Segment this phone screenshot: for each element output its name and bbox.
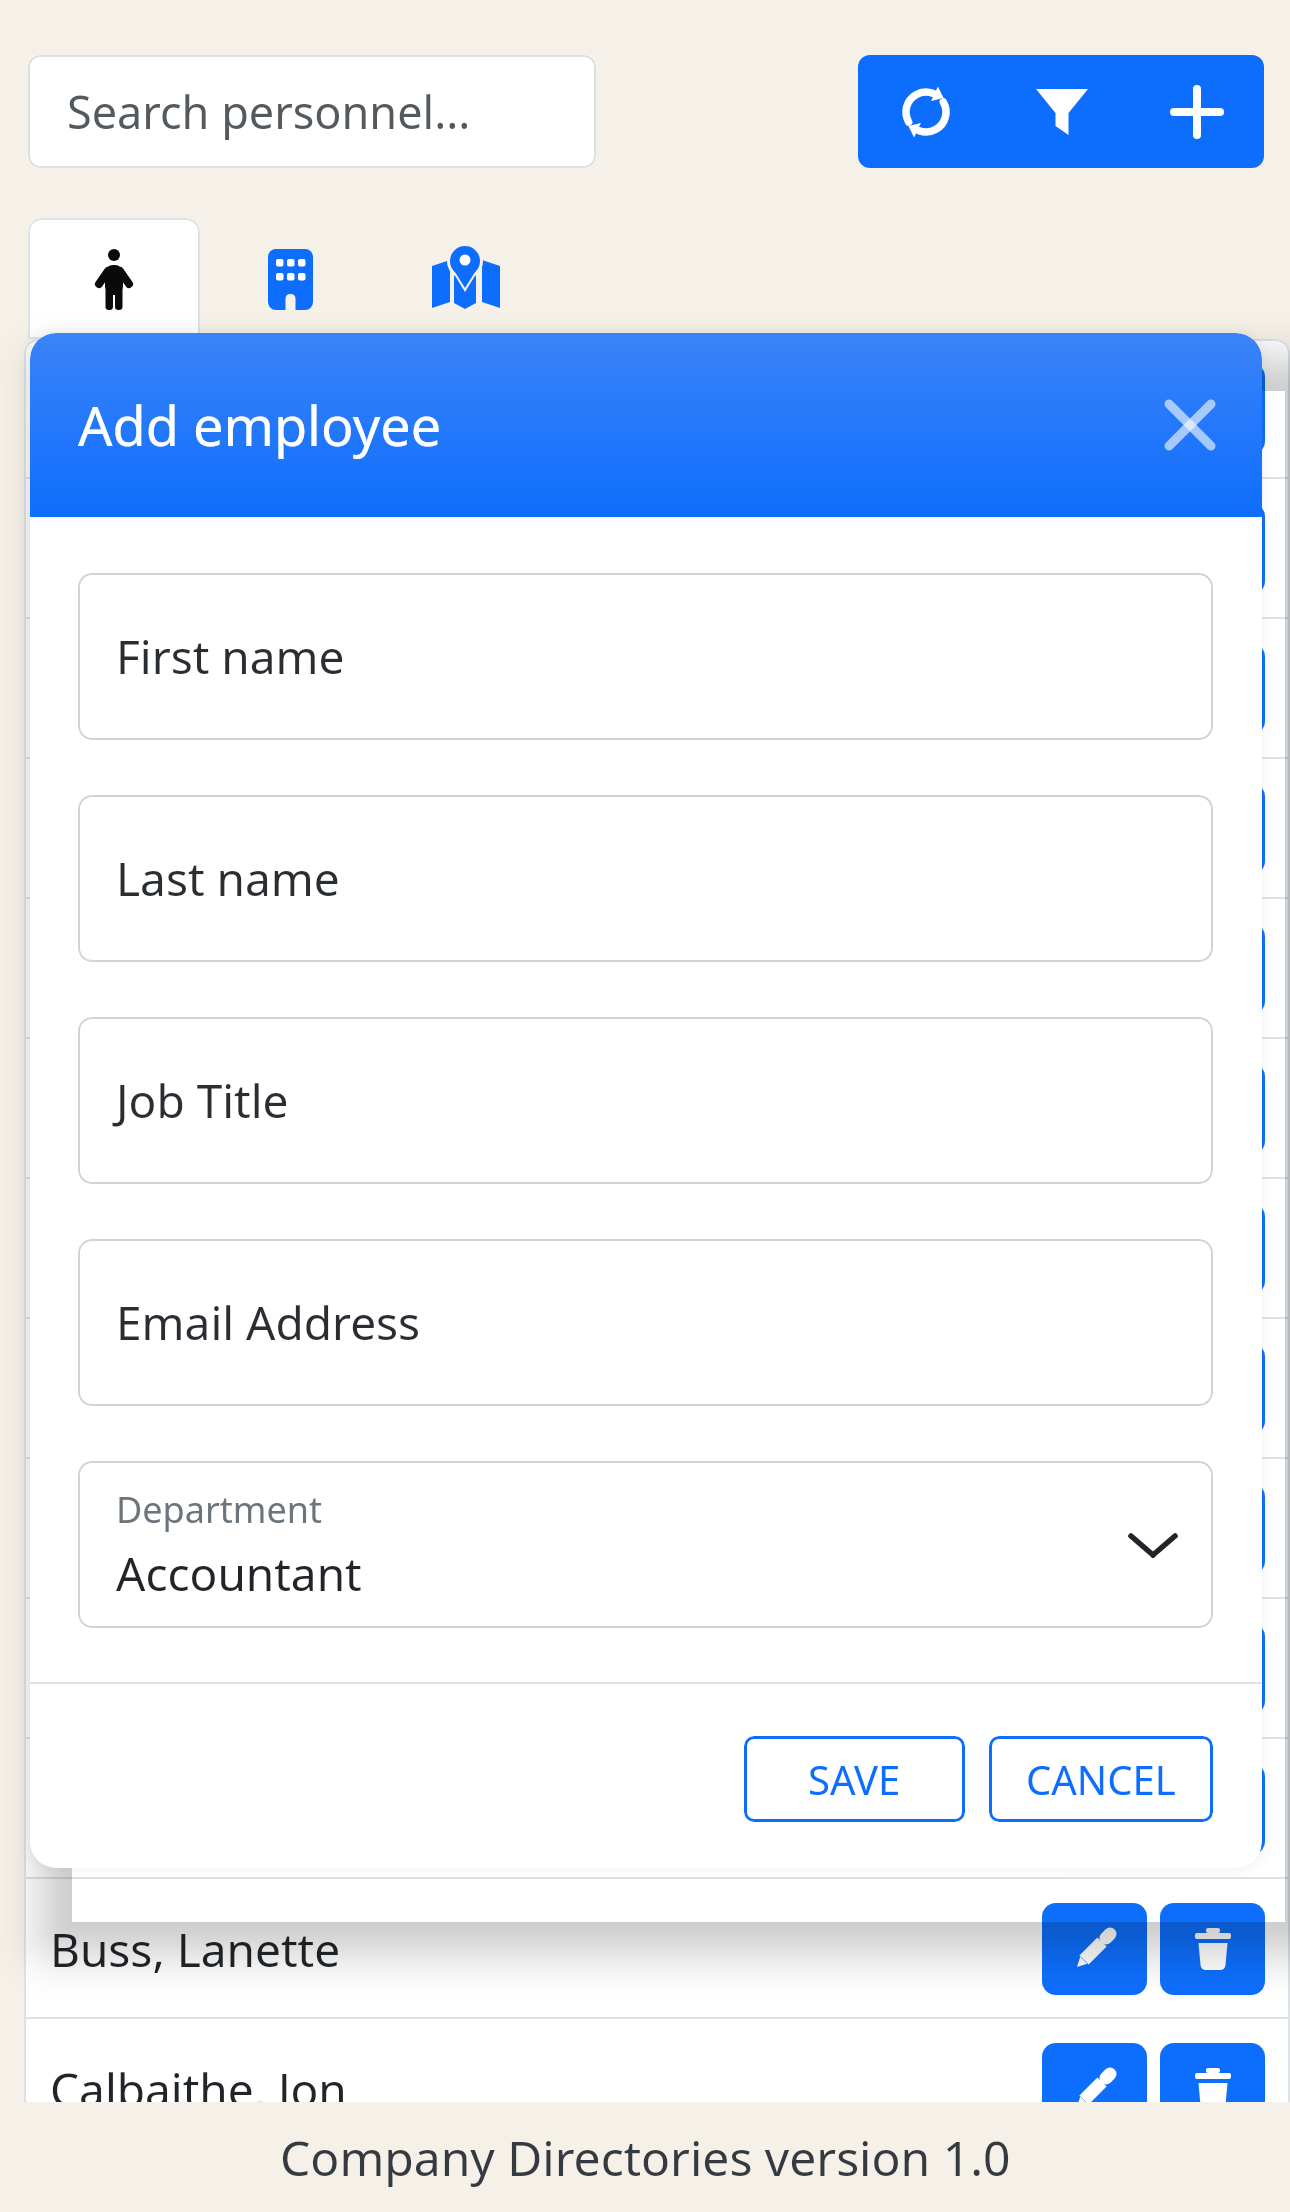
button[interactable] (1160, 1063, 1265, 1155)
button[interactable] (1042, 1623, 1147, 1715)
button[interactable] (1160, 2043, 1265, 2135)
button[interactable] (1042, 1203, 1147, 1295)
staticText: Bates, Iris (50, 1638, 264, 1701)
staticText: Last name (116, 847, 340, 910)
button[interactable] (1042, 2043, 1147, 2135)
button[interactable]: Search personnel... (28, 55, 596, 168)
button[interactable]: First name (78, 573, 1213, 740)
button[interactable] (858, 55, 994, 168)
staticText: Alvarez, Ben (50, 658, 315, 721)
staticText: Add employee (78, 388, 442, 462)
button[interactable] (1042, 783, 1147, 875)
button[interactable] (1129, 55, 1264, 168)
staticText: Job Title (116, 1069, 289, 1132)
button[interactable]: Job Title (78, 1017, 1213, 1184)
button[interactable] (1160, 1903, 1265, 1995)
staticText: CANCEL (1026, 1752, 1176, 1806)
button[interactable] (380, 218, 552, 333)
button[interactable] (1160, 1483, 1265, 1575)
staticText: Adams, Rita (50, 518, 306, 581)
button[interactable] (1167, 402, 1213, 448)
button[interactable] (1042, 1343, 1147, 1435)
button[interactable] (1042, 503, 1147, 595)
button[interactable] (1160, 503, 1265, 595)
button[interactable]: Last name (78, 795, 1213, 962)
staticText: First name (116, 625, 345, 688)
button[interactable] (1160, 1763, 1265, 1855)
button[interactable] (1160, 783, 1265, 875)
button[interactable] (1160, 1203, 1265, 1295)
button[interactable] (1160, 923, 1265, 1015)
staticText: Search personnel... (67, 81, 471, 142)
button[interactable]: Department (78, 1461, 1213, 1628)
staticText: Department (116, 1485, 322, 1534)
staticText: Accountant (116, 1542, 362, 1605)
button[interactable] (1042, 1483, 1147, 1575)
staticText: Archer, Neil (50, 938, 295, 1001)
button[interactable]: SAVE (744, 1736, 965, 1822)
button[interactable] (1160, 1623, 1265, 1715)
staticText: Calbaithe, Jon (50, 2058, 347, 2121)
button[interactable] (1160, 643, 1265, 735)
staticText: Company Directories version 1.0 (280, 2125, 1011, 2190)
staticText: Atkins, Mary (50, 1078, 318, 1141)
button[interactable] (205, 218, 377, 333)
staticText: Baird, Lucy (50, 1358, 287, 1421)
staticText: Anders, Kay (50, 798, 306, 861)
button[interactable] (28, 218, 200, 339)
staticText: Buss, Lanette (50, 1918, 341, 1981)
staticText: Email Address (116, 1291, 421, 1354)
button[interactable]: CANCEL (989, 1736, 1213, 1822)
button[interactable] (1042, 923, 1147, 1015)
button[interactable]: Email Address (78, 1239, 1213, 1406)
button[interactable] (1042, 1903, 1147, 1995)
staticText: Abernathy, Sam (50, 378, 392, 441)
button[interactable] (1160, 1343, 1265, 1435)
button[interactable] (994, 55, 1129, 168)
staticText: Barnes, Omar (50, 1498, 350, 1561)
button[interactable] (1042, 363, 1147, 455)
staticText: Avery, Tom (50, 1218, 287, 1281)
button[interactable] (1160, 363, 1265, 455)
button[interactable] (1042, 1763, 1147, 1855)
staticText: SAVE (808, 1752, 901, 1806)
